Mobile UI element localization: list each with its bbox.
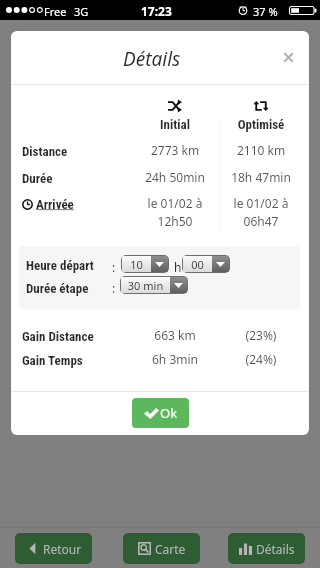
staticText: le 01/02 à xyxy=(218,195,304,211)
staticText: Retour xyxy=(43,541,82,557)
staticText: Détails xyxy=(123,46,181,72)
staticText: Ok xyxy=(160,404,178,422)
staticText: Détails xyxy=(256,541,295,557)
staticText: 2110 km xyxy=(218,142,304,158)
staticText: 17:23 xyxy=(141,3,172,19)
button[interactable]: Retour xyxy=(15,533,92,564)
staticText: Gain Temps xyxy=(22,353,83,368)
staticText: Durée étape xyxy=(26,281,89,296)
staticText: Distance xyxy=(22,144,68,159)
staticText: 10 xyxy=(122,257,151,272)
staticText: Arrivée xyxy=(36,197,74,212)
staticText: : xyxy=(112,259,116,275)
button[interactable]: Détails xyxy=(228,533,305,564)
staticText: h xyxy=(174,259,182,275)
staticText: : xyxy=(112,280,116,296)
button[interactable]: Fermer xyxy=(272,41,305,74)
staticText: 18h 47min xyxy=(218,169,304,185)
staticText: le 01/02 à xyxy=(132,195,218,211)
staticText: Durée xyxy=(22,171,53,186)
button[interactable]: Carte xyxy=(123,533,200,564)
staticText: (24%) xyxy=(218,351,304,367)
staticText: 06h47 xyxy=(218,213,304,229)
staticText: 12h50 xyxy=(132,213,218,229)
staticText: Initial xyxy=(132,117,218,132)
staticText: Free xyxy=(44,4,67,19)
staticText: 663 km xyxy=(132,327,218,343)
staticText: 6h 3min xyxy=(132,351,218,367)
staticText: 2773 km xyxy=(132,142,218,158)
button[interactable]: Ok xyxy=(132,398,189,428)
staticText: 00 xyxy=(183,257,212,272)
staticText: Gain Distance xyxy=(22,329,94,344)
staticText: Carte xyxy=(155,541,186,557)
staticText: 30 min xyxy=(121,278,170,293)
button[interactable]: 30 min xyxy=(120,276,188,294)
staticText: 3G xyxy=(74,4,89,19)
button[interactable]: 00 xyxy=(182,255,230,273)
staticText: (23%) xyxy=(218,327,304,343)
staticText: 37 % xyxy=(253,4,278,19)
staticText: Optimisé xyxy=(218,117,304,132)
button[interactable]: 10 xyxy=(121,255,169,273)
staticText: 24h 50min xyxy=(132,169,218,185)
staticText: Heure départ xyxy=(26,258,94,273)
